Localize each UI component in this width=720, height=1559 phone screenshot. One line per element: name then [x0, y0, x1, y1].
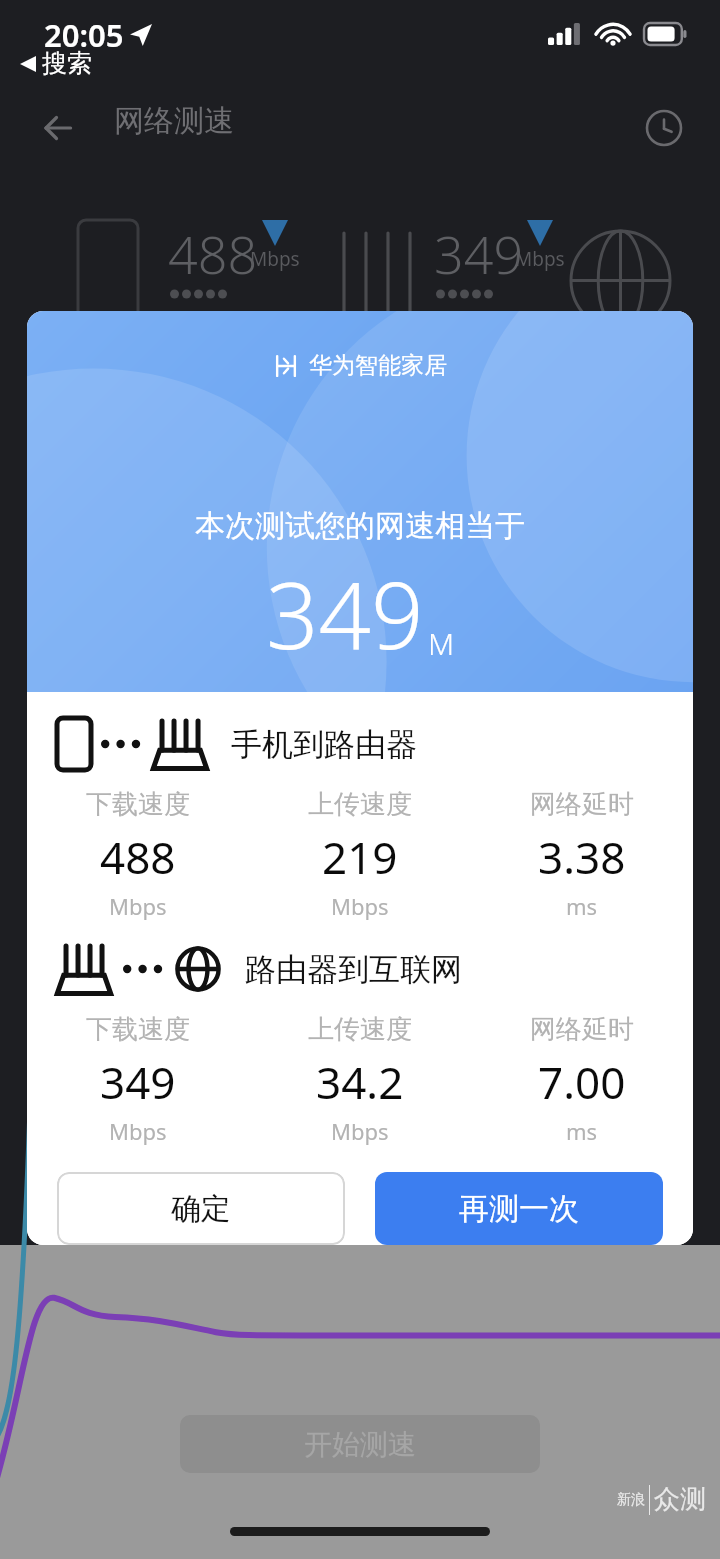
staticText: 手机到路由器: [231, 725, 417, 764]
staticText: 488: [100, 827, 176, 887]
staticText: 34.2: [432, 306, 526, 371]
staticText: 219: [166, 306, 249, 371]
staticText: 网络延时: [530, 788, 634, 821]
staticText: 下载速度: [86, 788, 190, 821]
staticText: 上传速度: [308, 1013, 412, 1046]
staticText: 349: [266, 551, 424, 676]
staticText: Mbps: [109, 891, 167, 921]
staticText: 349: [434, 218, 524, 289]
button[interactable]: 再测一次: [375, 1172, 663, 1245]
staticText: ms: [566, 1116, 598, 1146]
staticText: Mbps: [250, 246, 300, 272]
button[interactable]: 搜索: [20, 48, 92, 79]
staticText: 搜索: [42, 48, 92, 79]
staticText: 349: [100, 1052, 176, 1112]
staticText: 上传速度: [308, 788, 412, 821]
staticText: 7.00: [538, 1052, 626, 1112]
staticText: ms: [566, 891, 598, 921]
staticText: 华为智能家居: [309, 351, 447, 380]
staticText: 确定: [171, 1190, 231, 1228]
staticText: Mbps: [331, 1116, 389, 1146]
staticText: 下载速度: [86, 1013, 190, 1046]
staticText: 网络测速: [114, 102, 234, 140]
staticText: 再测一次: [459, 1190, 579, 1228]
staticText: 路由器到互联网: [245, 950, 462, 989]
staticText: 众测: [654, 1483, 706, 1516]
button[interactable]: 开始测速: [180, 1415, 540, 1473]
staticText: 219: [322, 827, 398, 887]
staticText: 开始测速: [304, 1427, 416, 1462]
staticText: 488: [168, 218, 258, 289]
staticText: 新浪: [617, 1491, 645, 1509]
staticText: Mbps: [109, 1116, 167, 1146]
staticText: 本次测试您的网速相当于: [195, 507, 525, 545]
staticText: Mbps: [331, 891, 389, 921]
button[interactable]: 确定: [57, 1172, 345, 1245]
staticText: 20:05: [44, 14, 124, 56]
button[interactable]: History: [636, 100, 692, 156]
staticText: 3.38: [538, 827, 626, 887]
button[interactable]: Back: [30, 100, 86, 156]
staticText: Mbps: [515, 246, 565, 272]
staticText: 34.2: [316, 1052, 404, 1112]
staticText: 网络延时: [530, 1013, 634, 1046]
staticText: M: [428, 623, 455, 664]
